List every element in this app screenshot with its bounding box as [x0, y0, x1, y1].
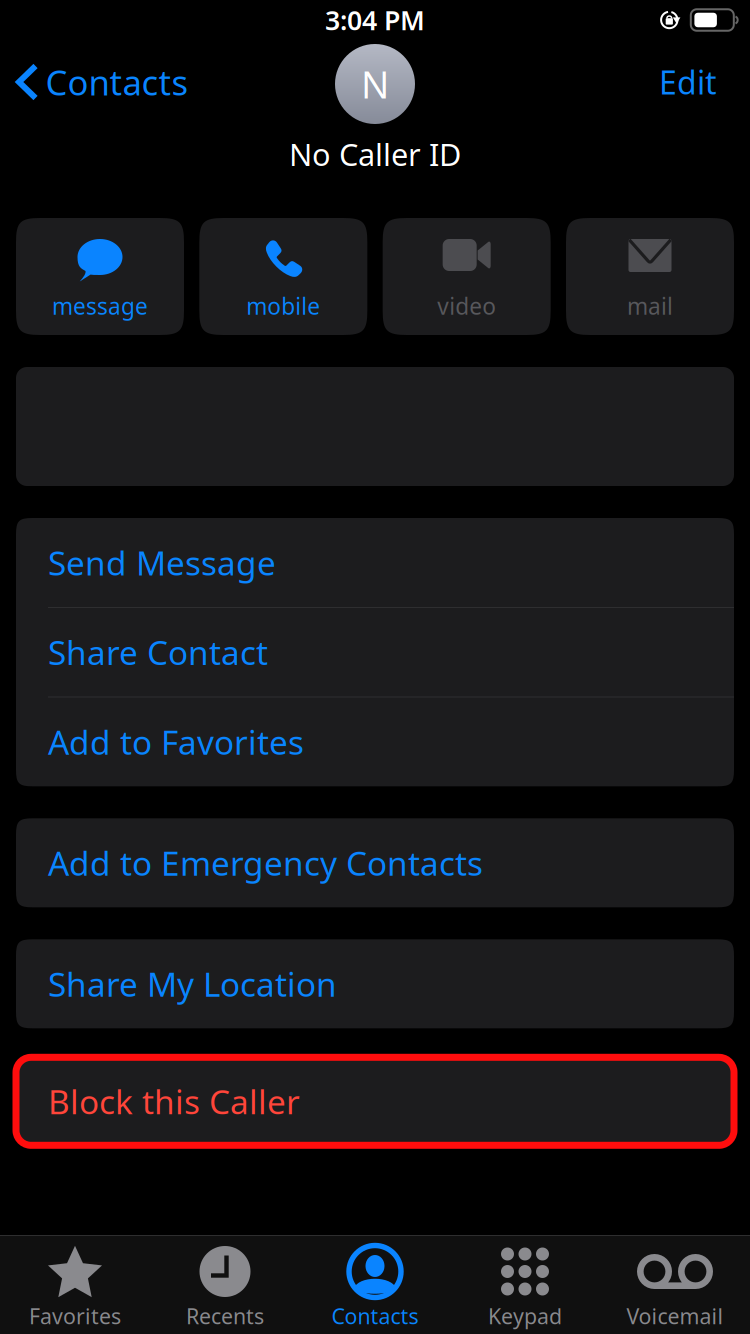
staticText: N — [361, 59, 389, 109]
button[interactable]: Add to Emergency Contacts — [16, 818, 734, 907]
staticText: Voicemail — [626, 1302, 723, 1330]
button[interactable]: Voicemail — [600, 1235, 750, 1334]
staticText: Block this Caller — [48, 1079, 300, 1123]
staticText: mobile — [246, 291, 320, 321]
button[interactable]: Call mobile — [199, 218, 367, 335]
button[interactable]: Send Message — [16, 518, 734, 607]
button[interactable]: Edit — [659, 52, 750, 112]
staticText: Add to Favorites — [48, 720, 304, 764]
staticText: Contacts — [45, 59, 188, 105]
button[interactable]: Video call — [383, 218, 551, 335]
staticText: Share My Location — [48, 962, 337, 1006]
staticText: 3:04 PM — [325, 2, 425, 38]
button[interactable]: Contacts — [300, 1235, 450, 1334]
staticText: Edit — [659, 61, 717, 103]
button[interactable]: Contacts — [0, 52, 188, 112]
staticText: Add to Emergency Contacts — [48, 841, 483, 885]
staticText: Favorites — [29, 1302, 121, 1330]
button[interactable]: Message — [16, 218, 184, 335]
staticText: Keypad — [488, 1302, 562, 1330]
button[interactable]: Block this Caller — [16, 1057, 734, 1145]
button[interactable]: Recents — [150, 1235, 300, 1334]
button[interactable]: Add to Favorites — [16, 697, 734, 786]
button[interactable]: Keypad — [450, 1235, 600, 1334]
staticText: Contacts — [331, 1302, 418, 1330]
staticText: No Caller ID — [289, 134, 461, 174]
staticText: mail — [627, 291, 673, 321]
staticText: video — [437, 291, 496, 321]
staticText: message — [52, 291, 148, 321]
button[interactable]: Share My Location — [16, 939, 734, 1028]
staticText: Share Contact — [48, 630, 268, 674]
button[interactable]: Share Contact — [16, 608, 734, 697]
staticText: Send Message — [48, 540, 276, 585]
button[interactable]: Favorites — [0, 1235, 150, 1334]
staticText: Recents — [186, 1302, 264, 1330]
button[interactable]: Mail — [566, 218, 734, 335]
